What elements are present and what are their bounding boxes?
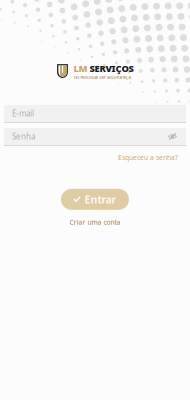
staticText: Senha <box>12 131 35 142</box>
staticText: Esqueceu a senha? <box>118 153 178 162</box>
staticText: TECNOLOGIA EM SEGURANÇA <box>73 74 131 80</box>
staticText: Entrar <box>84 192 116 206</box>
button[interactable]: Mostrar senha <box>165 129 180 144</box>
button[interactable]: Criar uma conta <box>69 218 120 227</box>
staticText: Criar uma conta <box>69 218 120 227</box>
staticText: LM <box>73 62 87 74</box>
staticText: E-mail <box>12 108 34 119</box>
staticText: SERVIÇOS <box>89 62 133 74</box>
button[interactable]: Esqueceu a senha? <box>118 153 178 162</box>
button[interactable]: Entrar <box>61 189 129 210</box>
